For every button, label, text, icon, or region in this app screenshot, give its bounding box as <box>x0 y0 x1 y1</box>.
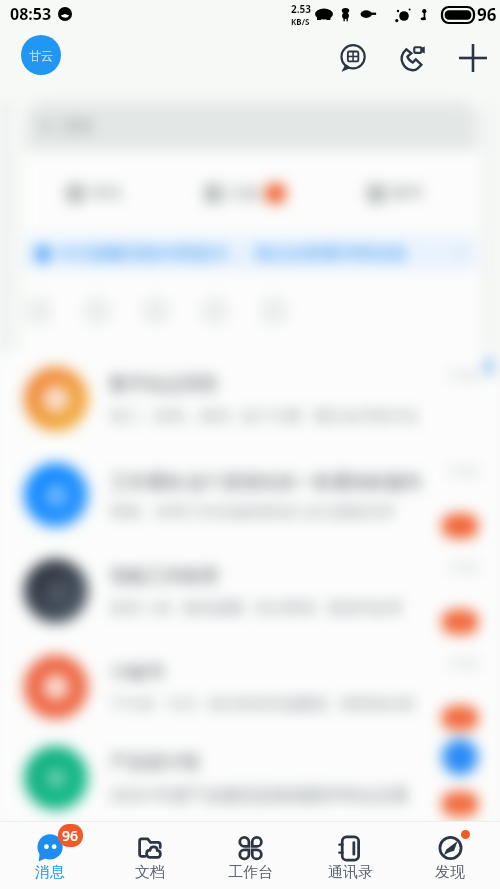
button[interactable]: 96 <box>0 821 100 889</box>
button[interactable]: 日程 <box>169 150 320 236</box>
button[interactable]: 数字化运营部 <box>0 351 500 447</box>
staticText: 通讯录 <box>328 863 373 882</box>
staticText: 数字化运营部 <box>110 373 218 396</box>
staticText: 1 <box>456 517 464 535</box>
staticText: 08:53 <box>10 3 52 25</box>
staticText: 文档 <box>135 863 165 882</box>
staticText: 甘云 <box>29 48 53 63</box>
button[interactable]: 小秘书 <box>0 639 500 735</box>
button[interactable]: 待办 <box>26 150 169 236</box>
button[interactable]: 通讯录 <box>300 821 400 889</box>
staticText: 产品设计组 <box>110 751 200 774</box>
button[interactable]: 工作通知·这个是很长的一条通知标题内容 <box>0 447 500 543</box>
staticText: 3 <box>456 709 464 727</box>
staticText: 2024 年度产品规划及路线图评审会议通知，请准时 <box>110 783 432 806</box>
staticText: 搜索 <box>63 117 93 136</box>
button[interactable]: 工作台 <box>200 821 300 889</box>
staticText: 邮件 <box>392 183 424 203</box>
button[interactable]: Add <box>451 36 495 80</box>
button[interactable]: AI assistant <box>330 36 374 80</box>
staticText: 发现 <box>435 863 465 882</box>
staticText: 2 <box>456 613 464 631</box>
staticText: 工作台 <box>228 863 273 882</box>
staticText: 请点击查看详情信息 <box>254 243 407 264</box>
button[interactable]: 邮件 <box>320 150 471 236</box>
button[interactable]: 文档 <box>100 821 200 889</box>
staticText: 下午好 · 今日 · 的日程安排提醒您 · 请查收内容 <box>110 693 416 713</box>
staticText: 12:30 <box>447 751 478 767</box>
staticText: 今日提醒消息内容提示， <box>58 243 245 264</box>
staticText: 日程 <box>229 184 261 204</box>
staticText: 消息 <box>35 863 65 882</box>
button[interactable]: Video call <box>391 36 435 80</box>
button[interactable]: 发现 <box>400 821 500 889</box>
staticText: 工作通知·这个是很长的一条通知标题内容 <box>110 469 432 494</box>
staticText: KB/S <box>291 16 310 27</box>
staticText: 智能工作助理 <box>110 565 218 588</box>
button[interactable]: 甘云 <box>21 35 61 75</box>
staticText: 小秘书 <box>110 661 164 684</box>
staticText: 96 <box>62 826 79 845</box>
button[interactable]: 产品设计组 <box>0 735 500 821</box>
button[interactable]: 智能工作助理 <box>0 543 500 639</box>
staticText: 周报：本周工作完成的情况汇总已更新完毕 <box>110 503 395 522</box>
staticText: 待办 <box>91 183 123 203</box>
staticText: 2.53 <box>291 2 311 16</box>
staticText: 96 <box>477 3 497 26</box>
staticText: 4 <box>456 795 464 813</box>
staticText: 张三：好的，收到 · 这个方案 · 我们会尽快讨论的 <box>110 405 432 425</box>
staticText: 您有 3 条 · 新的提醒 · 待办事项 · 请及时处理 <box>110 597 402 617</box>
